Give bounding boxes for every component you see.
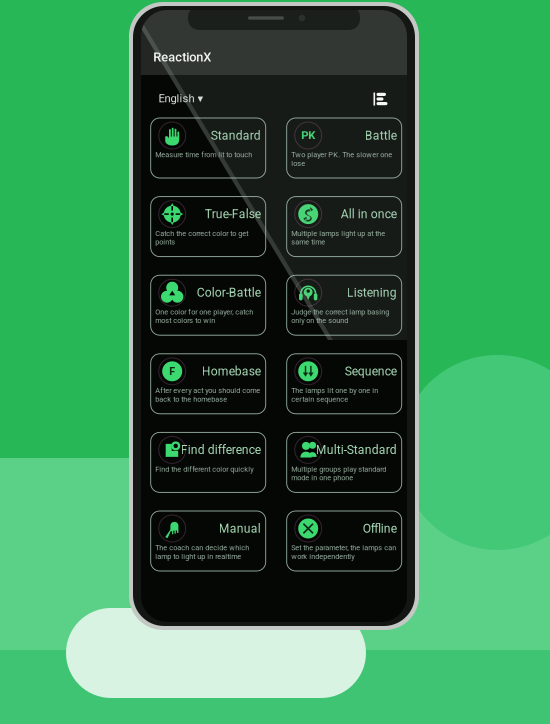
button[interactable]: Multi-Standard [287,432,402,492]
staticText: Multiple lamps light up at the same time [291,229,385,246]
staticText: Color-Battle [197,286,261,300]
button[interactable]: Standard [151,118,266,178]
button[interactable]: PK [287,118,402,178]
staticText: Homebase [202,364,261,378]
staticText: PK [301,129,315,142]
button[interactable]: Offline [287,511,402,571]
staticText: Multiple groups play standard mode in on… [291,465,386,482]
staticText: All in once [341,207,397,221]
staticText: Find the different color quickly [155,465,253,473]
staticText: English ▾ [158,92,203,105]
button[interactable]: All in once [287,197,402,257]
staticText: The lamps lit one by one in certain sequ… [291,386,378,403]
staticText: F [169,365,175,377]
staticText: Find difference [181,443,261,457]
button[interactable]: Color-Battle [151,275,266,335]
button[interactable]: Ranking [368,89,390,109]
button[interactable]: English ▾ [158,89,228,107]
button[interactable]: Sequence [287,354,402,414]
staticText: After every act you should come back to … [155,386,260,403]
button[interactable]: True-False [151,197,266,257]
staticText: Sequence [345,364,397,378]
staticText: One color for one player, catch most col… [155,308,253,325]
staticText: True-False [205,207,261,221]
staticText: Standard [211,128,261,143]
staticText: Battle [365,128,397,143]
staticText: Multi-Standard [316,443,397,457]
staticText: Measure time from lit to touch [155,150,252,159]
button[interactable]: Find difference [151,432,266,492]
staticText: ReactionX [153,49,211,64]
staticText: Listening [347,286,397,300]
staticText: Offline [363,521,397,536]
staticText: Two player PK. The slower one lose [291,150,392,168]
staticText: Judge the correct lamp basing only on th… [291,308,389,325]
button[interactable]: F [151,354,266,414]
button[interactable]: Listening [287,275,402,335]
staticText: Manual [219,521,261,536]
staticText: Catch the correct color to get points [155,229,248,246]
staticText: Set the parameter, the lamps can work in… [291,543,396,561]
staticText: The coach can decide which lamp to light… [155,543,249,561]
button[interactable]: Manual [151,511,266,571]
